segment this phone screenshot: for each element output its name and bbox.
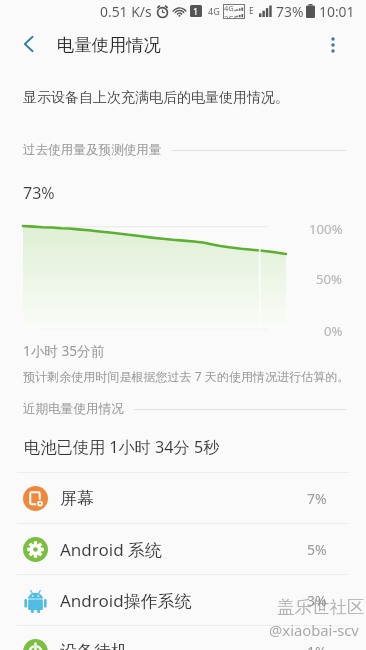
button[interactable]: Android操作系统 [0, 575, 366, 625]
staticText: 100% [309, 220, 343, 238]
staticText: 设备待机 [60, 641, 128, 650]
staticText: 0% [324, 322, 343, 340]
staticText: 3% [307, 591, 327, 610]
button[interactable]: More options [311, 23, 355, 67]
staticText: 盖乐世社区 [277, 596, 365, 618]
staticText: 50% [316, 270, 343, 288]
staticText: @xiaobai-scv [269, 620, 359, 640]
staticText: 5% [307, 540, 327, 559]
staticText: Android操作系统 [60, 589, 192, 612]
staticText: 73% [23, 182, 55, 204]
staticText: 电量使用情况 [57, 34, 161, 56]
staticText: 1 [193, 5, 199, 17]
button[interactable]: 屏幕 [0, 473, 366, 523]
staticText: E [249, 5, 254, 17]
button[interactable]: 设备待机 [0, 626, 366, 650]
staticText: 4G [208, 5, 220, 17]
staticText: Android 系统 [60, 538, 163, 561]
staticText: 近期电量使用情况 [23, 401, 124, 417]
staticText: 0.51 K/s [100, 2, 152, 21]
staticText: 73% [276, 2, 304, 21]
staticText: 显示设备自上次充满电后的电量使用情况。 [23, 89, 289, 107]
button[interactable]: Android 系统 [0, 524, 366, 574]
staticText: 电池已使用 1小时 34分 5秒 [24, 436, 220, 458]
staticText: 2G [224, 13, 234, 18]
staticText: 7% [307, 489, 327, 508]
staticText: 过去使用量及预测使用量 [23, 142, 162, 158]
staticText: 4G [224, 3, 234, 13]
staticText: 预计剩余使用时间是根据您过去 7 天的使用情况进行估算的。 [23, 368, 350, 384]
staticText: 10:01 [319, 2, 355, 21]
staticText: 屏幕 [60, 488, 94, 509]
button[interactable]: Back [7, 22, 51, 66]
staticText: 1小时 35分前 [23, 341, 105, 360]
staticText: 1% [307, 642, 327, 650]
